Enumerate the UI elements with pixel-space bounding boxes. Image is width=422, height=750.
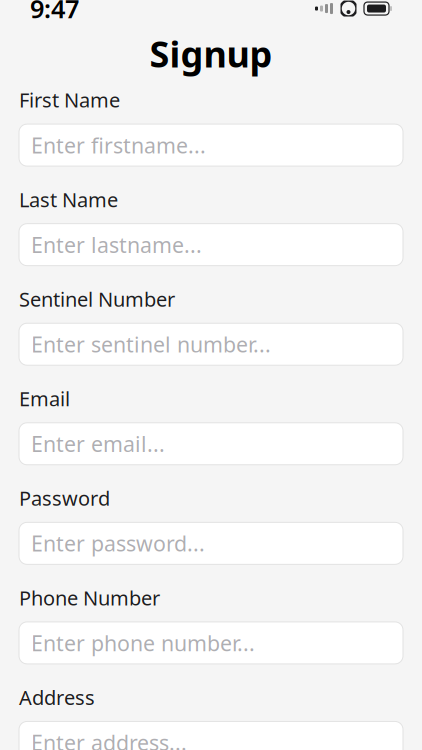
button[interactable]: Enter email... (19, 423, 403, 465)
staticText: Email (19, 385, 70, 412)
staticText: First Name (19, 86, 120, 113)
button[interactable]: Enter phone number... (19, 622, 403, 664)
staticText: Enter address... (31, 728, 187, 750)
staticText: Signup (149, 30, 272, 77)
staticText: Enter email... (31, 430, 165, 458)
staticText: Enter firstname... (31, 131, 206, 159)
button[interactable]: Enter firstname... (19, 124, 403, 166)
staticText: Sentinel Number (19, 286, 175, 312)
button[interactable]: Enter password... (19, 522, 403, 564)
staticText: Enter phone number... (31, 629, 255, 657)
staticText: Address (19, 684, 95, 710)
button[interactable]: Enter sentinel number... (19, 323, 403, 365)
staticText: Enter password... (31, 529, 205, 557)
staticText: Enter lastname... (31, 230, 202, 259)
staticText: Password (19, 485, 110, 511)
staticText: Last Name (19, 186, 118, 213)
staticText: Phone Number (19, 584, 160, 611)
button[interactable]: Enter address... (19, 721, 403, 750)
button[interactable]: Enter lastname... (19, 224, 403, 266)
staticText: Enter sentinel number... (31, 330, 271, 358)
staticText: 9:47 (30, 0, 79, 25)
